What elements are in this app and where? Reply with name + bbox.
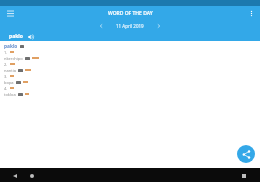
button[interactable]: Share xyxy=(237,145,255,163)
staticText: bopa xyxy=(4,80,14,85)
button[interactable]: Open navigation drawer xyxy=(4,7,16,19)
button[interactable]: 4. xyxy=(4,85,260,91)
button[interactable]: bopa xyxy=(4,79,260,85)
button[interactable]: Recent apps xyxy=(238,170,249,181)
staticText: tokloa xyxy=(4,92,16,97)
staticText: 2. xyxy=(4,62,8,67)
staticText: paklo xyxy=(4,43,18,49)
staticText: WORD OF THE DAY xyxy=(108,10,153,17)
button[interactable]: 2. xyxy=(4,61,260,67)
button[interactable]: Previous day xyxy=(96,21,106,31)
button[interactable]: nkerchipo xyxy=(4,55,260,61)
staticText: 3. xyxy=(4,74,8,79)
staticText: nantia xyxy=(4,68,16,73)
button[interactable]: More options xyxy=(245,7,257,19)
button[interactable]: Back xyxy=(9,170,20,181)
button[interactable]: tokloa xyxy=(4,91,260,97)
button[interactable]: Play pronunciation xyxy=(27,33,34,40)
staticText: paklo xyxy=(9,33,23,40)
button[interactable]: paklo xyxy=(4,43,24,49)
staticText: 4. xyxy=(4,86,8,91)
button[interactable]: 3. xyxy=(4,73,260,79)
button[interactable]: paklo xyxy=(0,32,260,41)
button[interactable]: Next day xyxy=(154,21,164,31)
staticText: 1. xyxy=(4,50,8,55)
staticText: nkerchipo xyxy=(4,56,23,61)
button[interactable]: Home xyxy=(26,170,37,181)
staticText: 11 April 2019 xyxy=(116,23,144,29)
button[interactable]: 1. xyxy=(4,49,260,55)
button[interactable]: nantia xyxy=(4,67,260,73)
